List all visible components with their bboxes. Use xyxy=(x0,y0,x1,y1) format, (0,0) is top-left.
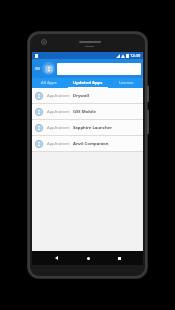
button[interactable]: Recent apps xyxy=(112,251,126,265)
button[interactable]: All Apps xyxy=(32,78,66,88)
button[interactable]: Application: xyxy=(32,136,143,151)
button[interactable]: Application: xyxy=(32,120,143,135)
button[interactable]: License xyxy=(110,78,143,88)
staticText: License xyxy=(119,80,134,86)
staticText: Application: xyxy=(47,125,71,131)
staticText: Application: xyxy=(47,109,71,115)
button[interactable]: Application: xyxy=(32,88,143,103)
button[interactable]: Search xyxy=(57,63,141,75)
staticText: Anvil Companion xyxy=(73,141,109,147)
staticText: Updated Apps xyxy=(73,80,103,86)
staticText: 12:30 xyxy=(130,53,141,58)
staticText: Application: xyxy=(47,141,71,147)
staticText: Application: xyxy=(47,93,71,99)
staticText: Drywall xyxy=(73,93,89,99)
button[interactable]: Home xyxy=(81,251,95,265)
button[interactable]: Menu xyxy=(34,62,41,75)
button[interactable]: Back xyxy=(49,251,63,265)
staticText: GSS Mobile xyxy=(73,109,96,115)
button[interactable]: Updated Apps xyxy=(66,78,110,88)
button[interactable]: Account xyxy=(42,62,55,75)
staticText: Sapphire Launcher xyxy=(73,125,113,131)
button[interactable]: Application: xyxy=(32,104,143,119)
staticText: All Apps xyxy=(41,80,57,86)
